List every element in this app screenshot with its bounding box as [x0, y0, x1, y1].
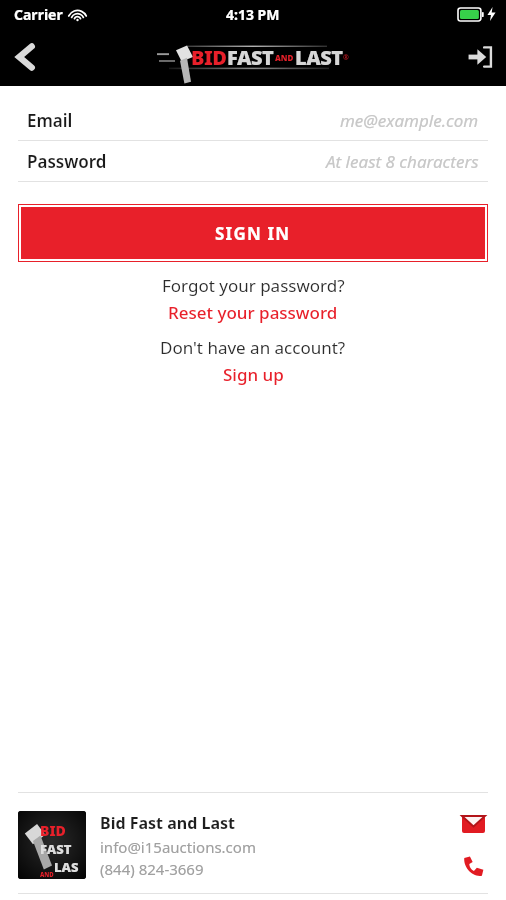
staticText: Password	[27, 150, 107, 173]
staticText: Don't have an account?	[160, 336, 346, 359]
staticText: Forgot your password?	[162, 274, 345, 297]
button[interactable]: Sign up	[223, 363, 284, 386]
staticText: AND	[275, 52, 294, 63]
staticText: Bid Fast and Last	[100, 812, 235, 834]
staticText: AND	[40, 871, 54, 879]
staticText: Reset your password	[168, 301, 338, 324]
staticText: BID	[40, 821, 66, 840]
button[interactable]: Call us	[454, 847, 492, 885]
staticText: info@i15auctions.com	[100, 837, 256, 857]
staticText: me@example.com	[340, 109, 479, 132]
button[interactable]: Reset your password	[168, 301, 338, 324]
button[interactable]: SIGN IN	[21, 207, 485, 259]
staticText: Email	[27, 109, 73, 132]
button[interactable]: Email	[0, 100, 506, 141]
staticText: Carrier	[14, 5, 63, 24]
staticText: BID	[191, 44, 227, 71]
staticText: (844) 824-3669	[100, 859, 204, 879]
staticText: FAST	[227, 44, 274, 71]
button[interactable]: Password	[0, 141, 506, 182]
staticText: Sign up	[223, 363, 284, 386]
staticText: At least 8 characters	[326, 150, 479, 173]
staticText: 4:13 PM	[226, 5, 280, 24]
button[interactable]: Email us	[454, 805, 492, 843]
staticText: LAST	[295, 44, 343, 71]
button[interactable]: Back	[0, 32, 50, 82]
button[interactable]: Sign in	[454, 31, 506, 83]
staticText: ®	[343, 53, 349, 63]
staticText: LAST	[54, 858, 86, 879]
staticText: FAST	[40, 840, 72, 858]
staticText: SIGN IN	[215, 222, 291, 245]
